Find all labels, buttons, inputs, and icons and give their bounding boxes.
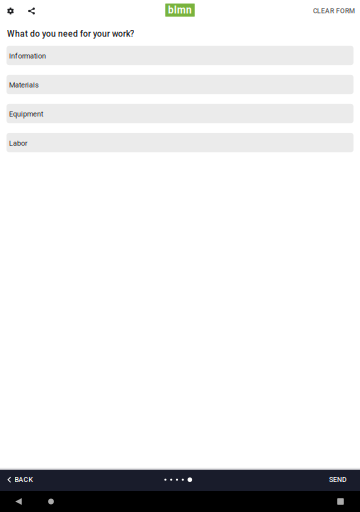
button[interactable]: Labor — [6, 133, 353, 152]
staticText: What do you need for your work? — [7, 29, 134, 39]
button[interactable]: Recent apps — [327, 491, 353, 512]
staticText: CLEAR FORM — [313, 7, 355, 15]
button[interactable]: Equipment — [6, 104, 353, 123]
staticText: BACK — [14, 476, 32, 484]
staticText: Labor — [9, 139, 27, 147]
button[interactable]: Settings — [0, 0, 21, 22]
staticText: SEND — [329, 476, 347, 484]
button[interactable]: Information — [6, 46, 353, 65]
button[interactable]: Back — [5, 491, 31, 512]
button[interactable]: Share — [21, 0, 42, 22]
button[interactable]: SEND — [329, 470, 360, 491]
staticText: Information — [9, 52, 46, 60]
staticText: Equipment — [9, 110, 43, 118]
button[interactable]: Home — [38, 491, 64, 512]
staticText: blmn — [168, 4, 192, 16]
staticText: Materials — [9, 81, 39, 89]
button[interactable]: Materials — [6, 75, 353, 94]
button[interactable]: BACK — [0, 470, 32, 491]
button[interactable]: CLEAR FORM — [313, 0, 360, 22]
